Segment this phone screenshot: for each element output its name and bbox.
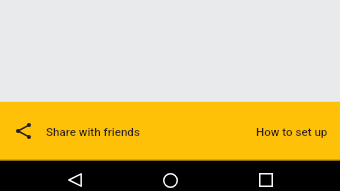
button[interactable]: Share with friends [0,102,152,161]
button[interactable]: Back [60,165,90,191]
staticText: How to set up [256,125,328,139]
staticText: Share with friends [46,125,140,139]
button[interactable]: Home [155,165,185,191]
button[interactable]: How to set up [243,102,340,161]
button[interactable]: Recent apps [251,165,281,191]
